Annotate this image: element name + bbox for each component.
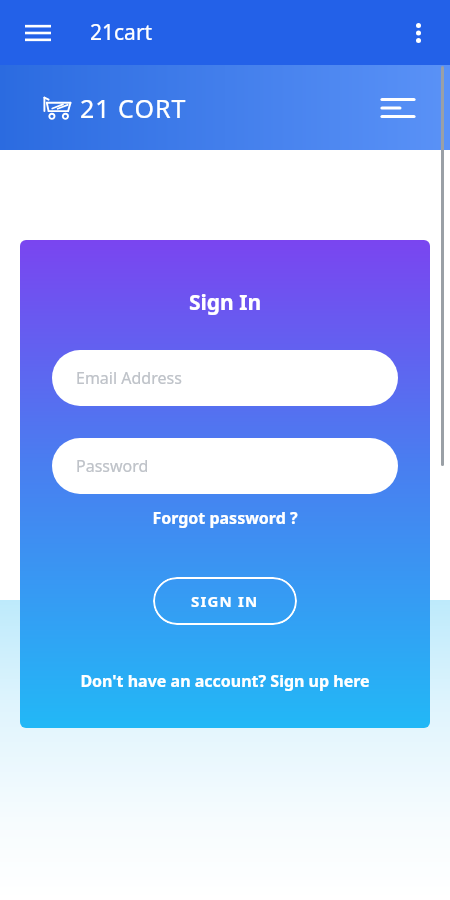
button[interactable]: 21 CORT <box>42 91 187 125</box>
button[interactable]: Navigation menu <box>18 13 58 53</box>
staticText: Email Address <box>76 367 182 389</box>
button[interactable]: Email Address <box>52 350 398 406</box>
staticText: Forgot password ? <box>152 507 298 529</box>
staticText: SIGN IN <box>191 591 259 611</box>
button[interactable]: More options <box>396 11 440 55</box>
button[interactable]: Forgot password ? <box>146 505 304 531</box>
button[interactable]: SIGN IN <box>153 577 297 625</box>
staticText: Don't have an account? Sign up here <box>80 670 370 692</box>
button[interactable]: Don't have an account? Sign up here <box>74 668 376 694</box>
button[interactable]: Open menu <box>374 84 422 132</box>
staticText: Sign In <box>189 288 262 317</box>
staticText: Password <box>76 455 149 477</box>
button[interactable]: Password <box>52 438 398 494</box>
staticText: 21 CORT <box>80 91 187 125</box>
staticText: 21cart <box>90 18 153 47</box>
